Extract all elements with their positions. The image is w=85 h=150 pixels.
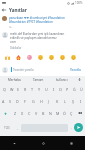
staticText: Z — [14, 111, 17, 116]
button[interactable]: Backspace — [75, 107, 85, 119]
button[interactable]: Emoji reaction — [13, 53, 24, 62]
staticText: G — [32, 99, 35, 104]
staticText: Ö — [63, 111, 66, 116]
staticText: Ç — [70, 111, 73, 116]
button[interactable]: A — [0, 95, 7, 107]
button[interactable]: W — [8, 83, 15, 95]
button[interactable]: L — [61, 95, 69, 107]
staticText: Dakikalar — [10, 46, 22, 50]
staticText: Ü — [80, 87, 83, 92]
button[interactable]: S — [7, 95, 14, 107]
staticText: V — [35, 111, 38, 116]
staticText: kullanıcı — [56, 78, 68, 82]
button[interactable]: melti.def Bunlardan yeni işik kazandıran… — [0, 29, 85, 51]
staticText: Ğ — [73, 87, 76, 92]
button[interactable]: I — [50, 83, 57, 95]
staticText: U — [45, 87, 48, 92]
staticText: melti.def Bunlardan yeni işik kazandıran… — [10, 32, 65, 44]
button[interactable]: Yanıtla — [69, 67, 83, 73]
staticText: W — [10, 87, 14, 92]
button[interactable]: Back — [1, 7, 7, 13]
staticText: H — [40, 99, 43, 104]
button[interactable]: C — [26, 107, 33, 119]
staticText: K — [56, 99, 59, 104]
button[interactable]: Ş — [69, 95, 77, 107]
staticText: Ş — [72, 99, 75, 104]
button[interactable]: Voice input — [74, 76, 85, 83]
staticText: , — [17, 126, 18, 130]
button[interactable]: D — [14, 95, 21, 107]
staticText: D — [16, 99, 19, 104]
button[interactable]: K — [53, 95, 61, 107]
button[interactable]: N — [47, 107, 54, 119]
button[interactable]: Ü — [78, 83, 85, 95]
staticText: ?123 — [4, 126, 10, 130]
staticText: C — [28, 111, 31, 116]
staticText: X — [21, 111, 24, 116]
staticText: P — [66, 87, 69, 92]
button[interactable]: Emoji reaction — [2, 53, 13, 62]
staticText: B — [42, 111, 45, 116]
staticText: Yanıtlar — [9, 7, 27, 13]
button[interactable]: Emoji reaction — [24, 53, 35, 62]
button[interactable]: P — [64, 83, 71, 95]
button[interactable]: E — [15, 83, 22, 95]
button[interactable]: Emoji reaction — [57, 53, 68, 62]
button[interactable]: Shift — [0, 107, 11, 119]
button[interactable]: T — [29, 83, 36, 95]
button[interactable]: kullanıcı — [50, 76, 74, 83]
button[interactable]: R — [22, 83, 29, 95]
staticText: 100% — [75, 1, 83, 5]
button[interactable]: Ö — [61, 107, 68, 119]
staticText: M — [56, 111, 60, 116]
button[interactable]: J — [45, 95, 53, 107]
staticText: Q — [3, 87, 6, 92]
button[interactable]: Z — [11, 107, 19, 119]
staticText: Merhaba — [8, 78, 21, 82]
staticText: Tweetini yanıtla — [13, 68, 34, 72]
button[interactable]: Ğ — [71, 83, 78, 95]
button[interactable]: Recent apps — [57, 136, 85, 150]
button[interactable]: M — [54, 107, 61, 119]
button[interactable]: Emoji reaction — [68, 53, 79, 62]
button[interactable]: B — [40, 107, 47, 119]
button[interactable]: Emoji reaction — [46, 53, 57, 62]
staticText: F — [24, 99, 26, 104]
staticText: Tamam — [33, 78, 44, 82]
button[interactable]: Home — [29, 136, 57, 150]
staticText: T — [31, 87, 34, 92]
button[interactable]: ?123 — [0, 119, 14, 136]
button[interactable]: I — [77, 95, 85, 107]
button[interactable]: U — [43, 83, 50, 95]
button[interactable]: yavuzkaan ❤❤ #cumhuriyet #foundation #fo… — [0, 14, 85, 28]
staticText: N — [49, 111, 52, 116]
staticText: yavuzkaan ❤❤ #cumhuriyet #foundation #fo… — [9, 16, 65, 24]
button[interactable]: Back — [0, 136, 29, 150]
button[interactable]: Q — [0, 83, 8, 95]
staticText: . — [71, 126, 72, 130]
button[interactable]: O — [57, 83, 64, 95]
button[interactable]: H — [37, 95, 45, 107]
staticText: I — [53, 87, 55, 92]
staticText: O — [59, 87, 62, 92]
staticText: R — [24, 87, 27, 92]
button[interactable]: G — [29, 95, 37, 107]
staticText: I — [80, 99, 82, 104]
button[interactable]: Ç — [68, 107, 75, 119]
button[interactable]: Emoji reaction — [35, 53, 46, 62]
button[interactable]: Merhaba — [2, 76, 26, 83]
button[interactable]: F — [21, 95, 29, 107]
staticText: L — [64, 99, 66, 104]
button[interactable]: X — [19, 107, 26, 119]
button[interactable]: V — [33, 107, 40, 119]
staticText: E — [17, 87, 20, 92]
staticText: 2s — [9, 26, 12, 28]
staticText: S — [9, 99, 12, 104]
button[interactable]: Y — [36, 83, 43, 95]
staticText: Yanıtla — [70, 68, 82, 72]
button[interactable]: Tamam — [26, 76, 50, 83]
button[interactable]: Send — [74, 123, 83, 132]
